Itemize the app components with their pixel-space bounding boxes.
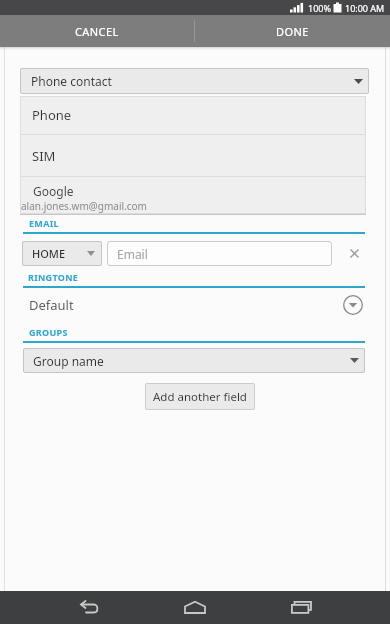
staticText: Google (33, 183, 74, 199)
staticText: RINGTONE (28, 271, 79, 283)
staticText: 10:00 AM (345, 2, 385, 14)
button[interactable]: Default (23, 291, 343, 319)
button[interactable]: HOME (22, 241, 102, 266)
button[interactable] (59, 591, 119, 623)
button[interactable]: Phone contact (20, 68, 369, 94)
staticText: Email (117, 246, 148, 262)
button[interactable]: Group name (23, 348, 365, 373)
staticText: GROUPS (29, 326, 68, 338)
staticText: HOME (32, 246, 66, 261)
staticText: EMAIL (29, 217, 59, 229)
staticText: Phone contact (31, 73, 112, 89)
staticText: SIM (32, 147, 56, 165)
button[interactable] (165, 591, 225, 623)
staticText: alan.jones.wm@gmail.com (21, 199, 147, 213)
staticText: Group name (33, 353, 104, 369)
button[interactable] (344, 243, 364, 263)
staticText: Default (29, 296, 74, 314)
button[interactable]: Add another field (145, 383, 255, 410)
button[interactable] (340, 292, 366, 318)
button[interactable]: DONE (195, 15, 390, 47)
button[interactable]: Phone (20, 96, 366, 134)
staticText: 100% (308, 2, 331, 14)
staticText: Phone (32, 106, 72, 124)
button[interactable] (271, 591, 331, 623)
button[interactable]: Google (20, 177, 366, 214)
staticText: CANCEL (75, 24, 119, 39)
staticText: Add another field (153, 389, 247, 405)
button[interactable]: CANCEL (0, 15, 194, 47)
button[interactable]: SIM (20, 135, 366, 176)
button[interactable]: Email (107, 241, 332, 266)
staticText: DONE (276, 24, 309, 39)
